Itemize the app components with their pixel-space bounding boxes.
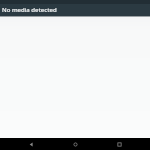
- button[interactable]: Home: [62, 138, 88, 150]
- button[interactable]: No media detected: [0, 4, 150, 16]
- button[interactable]: Back: [18, 138, 44, 150]
- button[interactable]: Recent apps: [106, 138, 132, 150]
- staticText: No media detected: [2, 6, 57, 14]
